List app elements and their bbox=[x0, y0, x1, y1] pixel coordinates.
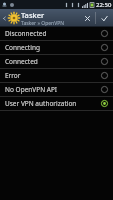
button[interactable]: Discard bbox=[79, 9, 95, 27]
staticText: Tasker » OpenVPN bbox=[21, 20, 64, 27]
staticText: User VPN authorization bbox=[5, 99, 101, 108]
button[interactable]: Connecting bbox=[0, 41, 113, 54]
staticText: Connected bbox=[5, 57, 101, 66]
button[interactable]: User VPN authorization bbox=[0, 97, 113, 110]
button[interactable]: Error bbox=[0, 69, 113, 82]
staticText: Tasker bbox=[21, 10, 45, 20]
staticText: 22:50 bbox=[96, 1, 112, 9]
staticText: No OpenVPN API bbox=[5, 85, 101, 94]
button[interactable]: Save bbox=[96, 9, 112, 27]
staticText: Error bbox=[5, 71, 101, 80]
button[interactable]: Back bbox=[1, 9, 8, 27]
button[interactable]: No OpenVPN API bbox=[0, 83, 113, 96]
button[interactable]: Connected bbox=[0, 55, 113, 68]
staticText: Connecting bbox=[5, 43, 101, 52]
button[interactable]: Disconnected bbox=[0, 27, 113, 40]
staticText: Disconnected bbox=[5, 29, 101, 38]
